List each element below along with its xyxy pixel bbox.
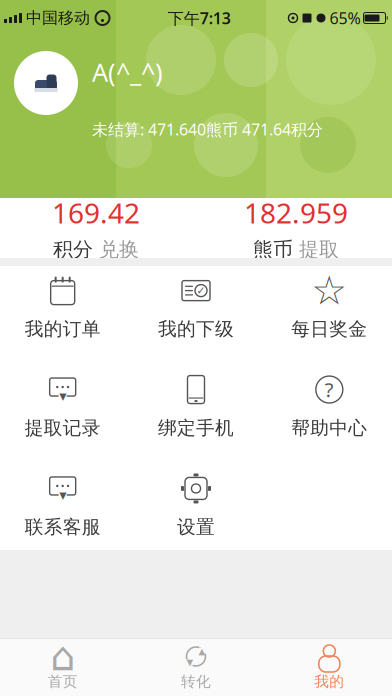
- staticText: 我的下级: [158, 318, 234, 340]
- staticText: 联系客服: [25, 515, 101, 538]
- staticText: 熊币: [253, 237, 293, 262]
- staticText: ▾: [59, 388, 66, 404]
- button[interactable]: 我的订单: [0, 256, 129, 354]
- staticText: 未结算: 471.640熊币 471.64积分: [92, 119, 323, 140]
- staticText: ▾: [59, 487, 66, 503]
- button[interactable]: ▴: [129, 638, 263, 696]
- staticText: 65%: [329, 7, 360, 29]
- button[interactable]: 我的: [263, 638, 392, 696]
- staticText: 每日奖金: [291, 318, 367, 340]
- staticText: 帮助中心: [291, 416, 367, 439]
- staticText: 绑定手机: [158, 416, 234, 439]
- staticText: 我的: [314, 672, 344, 690]
- button[interactable]: 169.42: [0, 184, 196, 272]
- staticText: ▾: [186, 654, 193, 669]
- staticText: 中国移动: [26, 8, 90, 28]
- staticText: 169.42: [52, 194, 140, 231]
- staticText: 提取: [299, 237, 339, 262]
- button[interactable]: Profile photo: [14, 51, 78, 115]
- button[interactable]: ☆: [263, 256, 392, 354]
- staticText: ☆: [311, 268, 347, 313]
- button[interactable]: ▾: [0, 453, 129, 552]
- button[interactable]: 182.959: [196, 184, 392, 272]
- staticText: ⌂: [50, 634, 75, 679]
- staticText: ▴: [198, 643, 205, 658]
- staticText: A(^_^): [92, 55, 163, 89]
- button[interactable]: ?: [263, 354, 392, 453]
- staticText: 兑换: [99, 237, 139, 262]
- button[interactable]: ⌂: [0, 638, 129, 696]
- staticText: 下午7:13: [168, 7, 231, 29]
- button[interactable]: 设置: [129, 453, 263, 552]
- staticText: ?: [325, 376, 334, 403]
- staticText: 积分: [53, 237, 93, 262]
- staticText: 转化: [181, 672, 211, 690]
- staticText: 182.959: [244, 194, 348, 231]
- staticText: 首页: [48, 672, 78, 690]
- button[interactable]: ✓: [129, 256, 263, 354]
- staticText: ✓: [196, 285, 205, 297]
- staticText: 设置: [177, 515, 215, 538]
- button[interactable]: 绑定手机: [129, 354, 263, 453]
- staticText: 我的订单: [25, 318, 101, 340]
- staticText: 提取记录: [25, 416, 101, 439]
- button[interactable]: ▾: [0, 354, 129, 453]
